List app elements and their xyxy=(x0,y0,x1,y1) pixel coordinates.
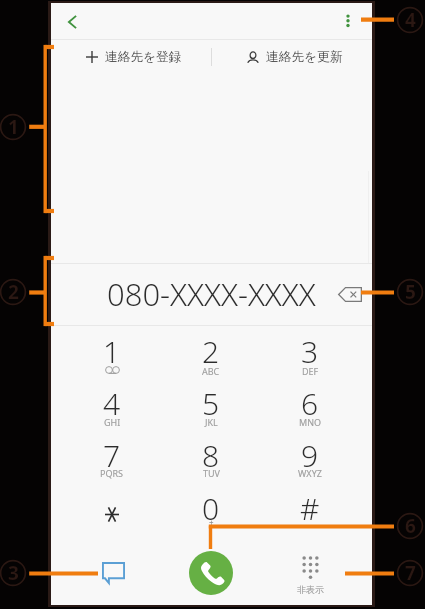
button[interactable]: Messages xyxy=(87,547,139,599)
staticText: 連絡先を更新 xyxy=(266,49,343,65)
staticText: 5 xyxy=(405,279,416,305)
staticText: TUV xyxy=(203,467,220,479)
staticText: DEF xyxy=(302,365,319,377)
button[interactable] xyxy=(64,487,160,535)
staticText: 8 xyxy=(202,435,220,473)
button[interactable] xyxy=(280,551,340,599)
button[interactable]: Call xyxy=(189,551,233,595)
staticText: 080-XXXX-XXXX xyxy=(107,273,316,315)
button[interactable] xyxy=(262,330,358,378)
staticText: 9 xyxy=(301,435,319,473)
staticText: 7 xyxy=(103,435,121,473)
staticText: 4 xyxy=(103,383,121,421)
staticText: GHI xyxy=(104,416,121,428)
button[interactable] xyxy=(262,487,358,535)
button[interactable]: Back xyxy=(53,3,91,41)
staticText: 5 xyxy=(202,383,220,421)
staticText: 2 xyxy=(8,279,19,305)
staticText: 非表示 xyxy=(297,584,324,595)
button[interactable]: 連絡先を更新 xyxy=(212,37,372,76)
button[interactable] xyxy=(262,382,358,430)
staticText: ABC xyxy=(202,365,220,377)
staticText: 2 xyxy=(202,331,220,369)
staticText: PQRS xyxy=(100,467,124,479)
staticText: + xyxy=(209,517,214,528)
staticText: 3 xyxy=(301,331,319,369)
button[interactable]: More options xyxy=(329,5,367,39)
staticText: 7 xyxy=(405,560,416,586)
button[interactable] xyxy=(64,330,160,378)
staticText: 3 xyxy=(8,560,19,586)
staticText: 4 xyxy=(405,7,416,33)
staticText: # xyxy=(300,488,320,526)
button[interactable] xyxy=(163,487,259,535)
staticText: JKL xyxy=(205,416,218,428)
staticText: WXYZ xyxy=(298,467,322,479)
button[interactable] xyxy=(163,434,259,482)
button[interactable] xyxy=(262,434,358,482)
staticText: 1 xyxy=(103,331,121,369)
button[interactable] xyxy=(163,330,259,378)
button[interactable]: 連絡先を登録 xyxy=(51,37,211,76)
staticText: 6 xyxy=(405,513,416,539)
staticText: 連絡先を登録 xyxy=(105,49,182,65)
staticText: MNO xyxy=(299,416,322,428)
button[interactable] xyxy=(64,434,160,482)
button[interactable] xyxy=(163,382,259,430)
button[interactable]: Backspace xyxy=(331,275,369,313)
staticText: 0 xyxy=(202,488,220,526)
button[interactable] xyxy=(64,382,160,430)
staticText: 6 xyxy=(301,383,319,421)
staticText: 1 xyxy=(8,114,19,140)
